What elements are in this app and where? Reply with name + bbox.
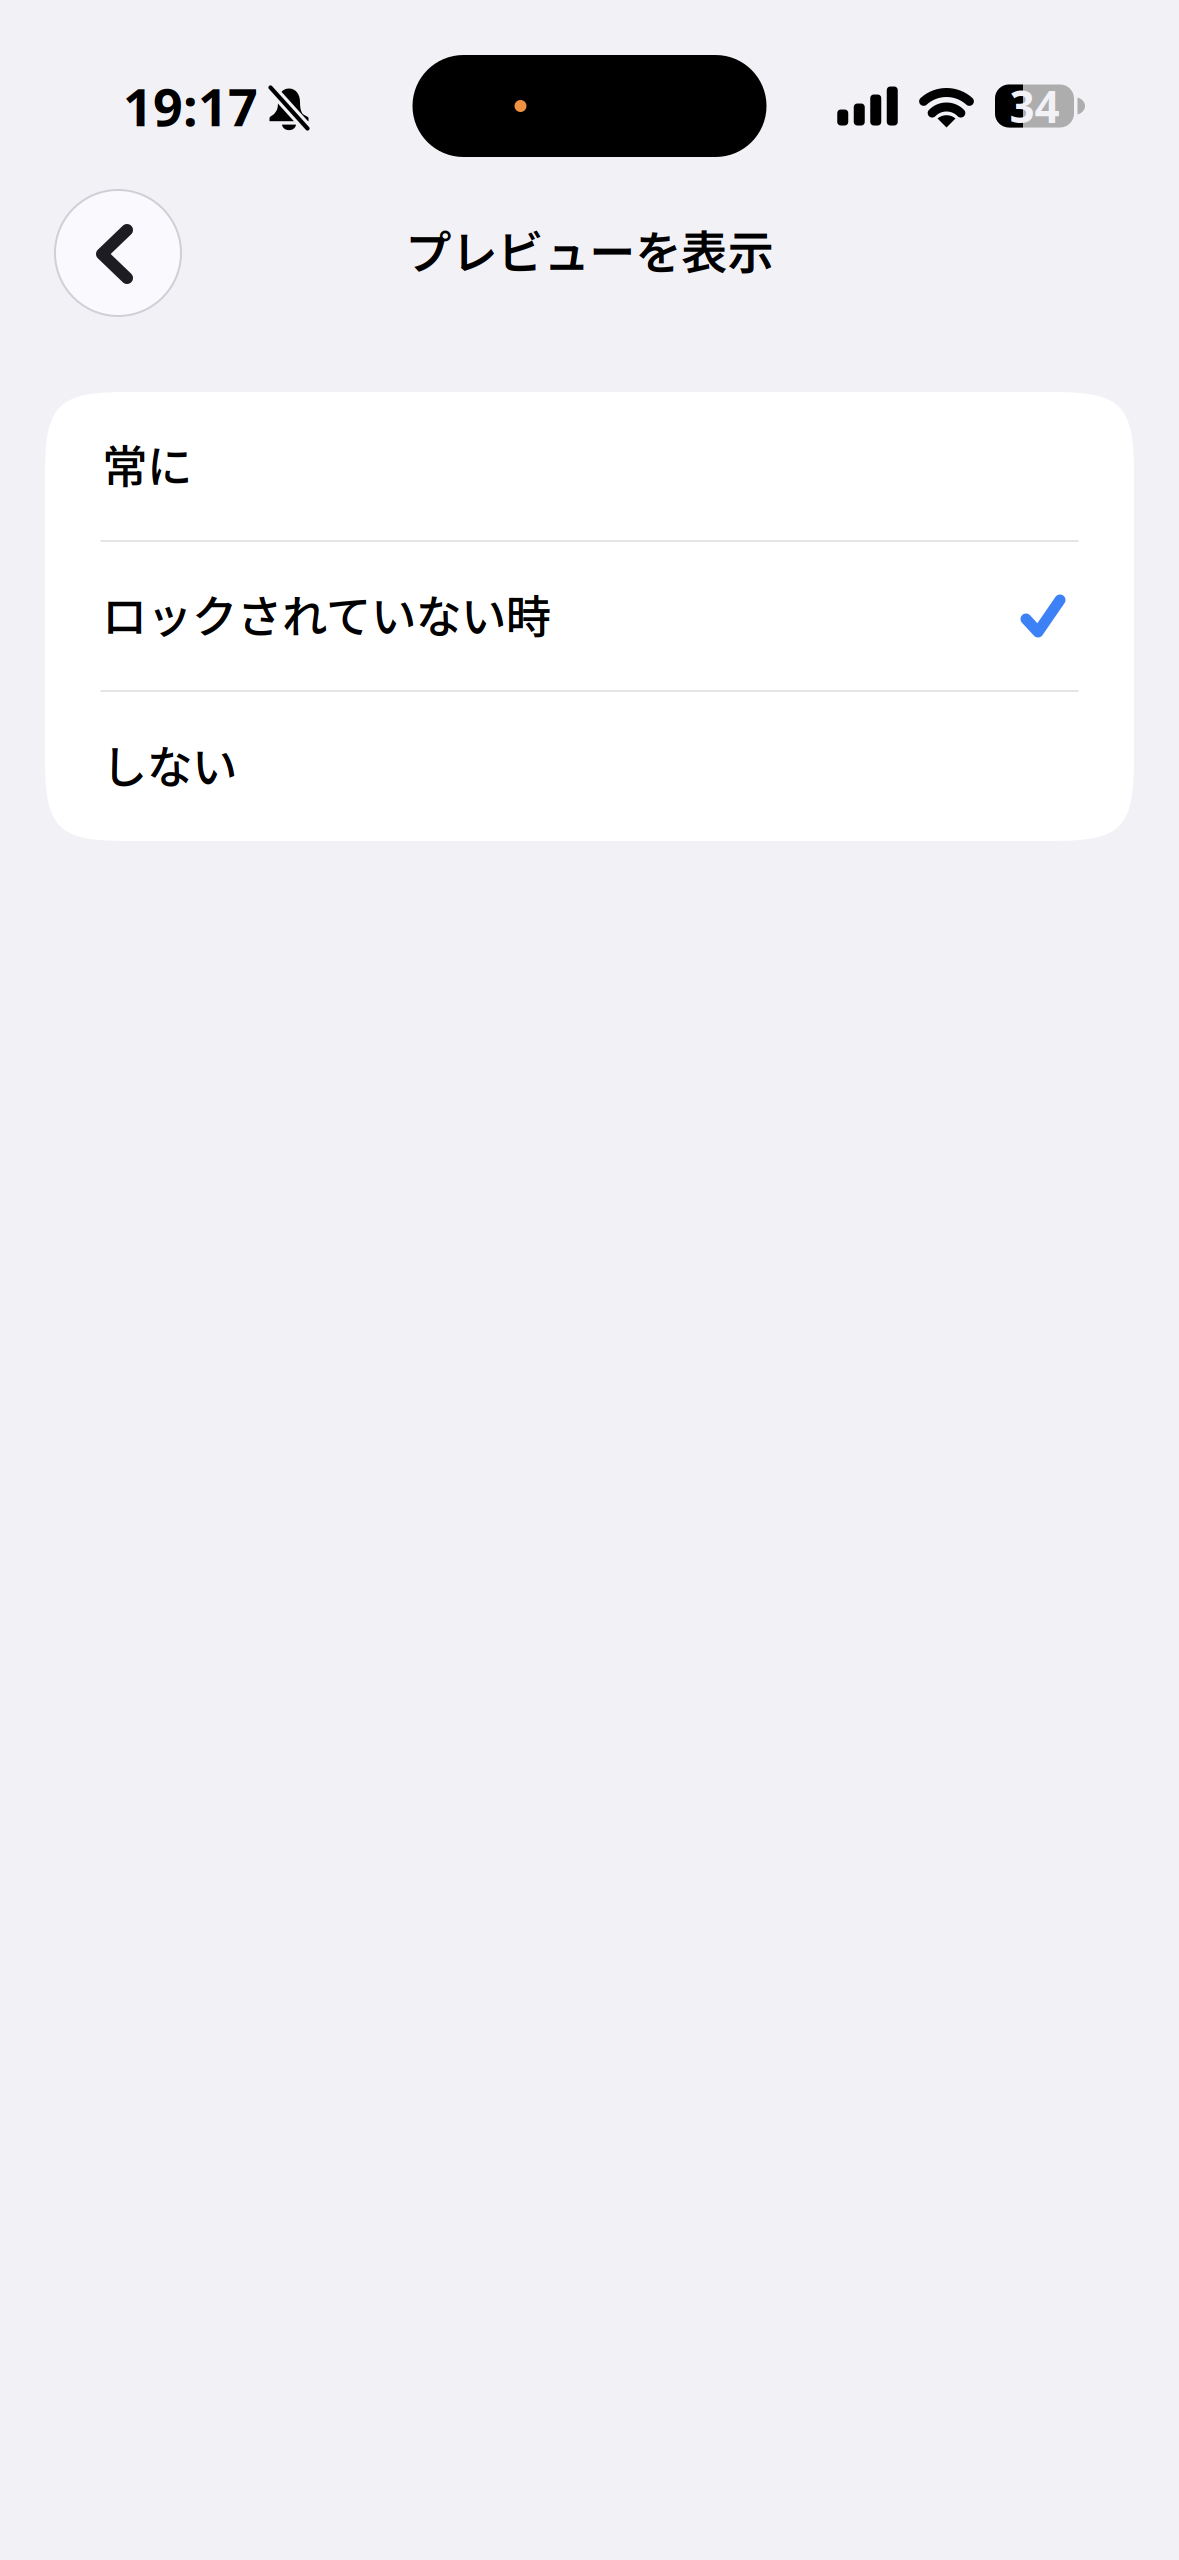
staticText: しない <box>102 731 237 797</box>
staticText: 34 <box>1009 77 1059 135</box>
staticText: ロックされていない時 <box>102 581 551 646</box>
staticText: プレビューを表示 <box>405 216 773 283</box>
staticText: 常に <box>102 431 192 496</box>
button[interactable]: Back <box>55 190 181 316</box>
button[interactable]: ロックされていない時 <box>45 542 1134 690</box>
button[interactable]: 常に <box>45 392 1134 540</box>
button[interactable]: しない <box>45 692 1134 841</box>
staticText: 19:17 <box>123 71 258 141</box>
